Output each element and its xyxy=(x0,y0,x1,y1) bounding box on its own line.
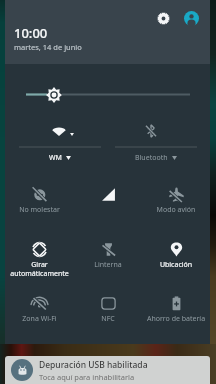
button[interactable]: NFC xyxy=(74,281,142,335)
staticText: Zona Wi-Fi xyxy=(5,314,74,324)
staticText: 10:00 xyxy=(14,24,48,42)
staticText: Ahorro de batería xyxy=(142,314,210,324)
button[interactable]: WM xyxy=(10,115,110,169)
button[interactable]: User profile xyxy=(179,6,203,30)
staticText: NFC xyxy=(74,314,142,324)
button[interactable]: Modo avión xyxy=(142,172,210,226)
staticText: Ubicación xyxy=(142,260,210,270)
button[interactable]: No molestar xyxy=(5,172,74,226)
staticText: Bluetooth xyxy=(135,153,168,163)
staticText: Depuración USB habilitada xyxy=(39,359,148,371)
button[interactable]: Ubicación xyxy=(142,227,210,281)
staticText: No molestar xyxy=(5,205,74,215)
button[interactable]: Settings xyxy=(151,6,175,30)
staticText: Modo avión xyxy=(142,205,210,215)
button[interactable]: Zona Wi-Fi xyxy=(5,281,74,335)
button[interactable]: Bluetooth xyxy=(106,115,206,169)
button[interactable]: Girar automáticamente xyxy=(5,227,74,281)
staticText: WM xyxy=(49,153,62,163)
staticText: Linterna xyxy=(74,260,142,270)
staticText: Toca aquí para inhabilitarla xyxy=(39,372,135,382)
button[interactable]: Brightness xyxy=(16,85,206,105)
button[interactable]: Ahorro de batería xyxy=(142,281,210,335)
staticText: Girar automáticamente xyxy=(5,260,74,278)
staticText: martes, 14 de junio xyxy=(14,42,82,52)
button[interactable]: Mobile data xyxy=(74,172,142,226)
button[interactable]: Depuración USB habilitada xyxy=(5,356,210,384)
button[interactable]: Linterna xyxy=(74,227,142,281)
